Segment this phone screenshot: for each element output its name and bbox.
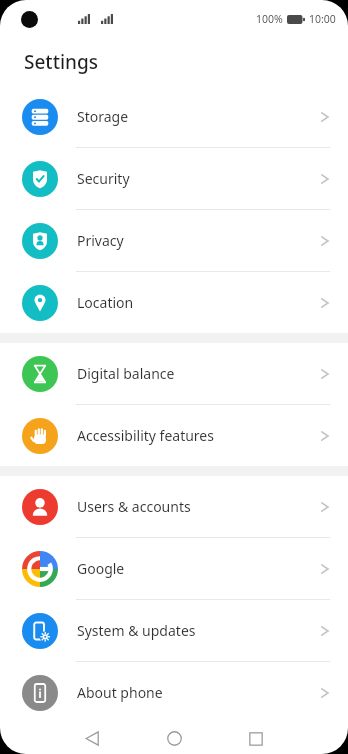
staticText: System & updates bbox=[77, 621, 196, 640]
button[interactable]: System & updates bbox=[0, 600, 348, 661]
button[interactable]: Accessibility features bbox=[0, 405, 348, 466]
staticText: Settings bbox=[24, 49, 98, 75]
staticText: Accessibility features bbox=[77, 426, 214, 445]
staticText: 100% bbox=[256, 12, 283, 26]
button[interactable]: Security bbox=[0, 148, 348, 209]
button[interactable]: Recents bbox=[228, 723, 284, 754]
staticText: Digital balance bbox=[77, 364, 175, 383]
button[interactable]: Digital balance bbox=[0, 343, 348, 404]
staticText: 10:00 bbox=[309, 12, 336, 26]
button[interactable]: Back bbox=[64, 723, 120, 754]
staticText: Location bbox=[77, 293, 134, 312]
button[interactable]: About phone bbox=[0, 662, 348, 723]
button[interactable]: Home bbox=[146, 723, 202, 754]
staticText: About phone bbox=[77, 683, 163, 702]
button[interactable]: Users & accounts bbox=[0, 476, 348, 537]
button[interactable]: Location bbox=[0, 272, 348, 333]
button[interactable]: Privacy bbox=[0, 210, 348, 271]
button[interactable]: Storage bbox=[0, 86, 348, 147]
staticText: Users & accounts bbox=[77, 497, 191, 516]
staticText: Security bbox=[77, 169, 130, 188]
staticText: Storage bbox=[77, 107, 129, 126]
button[interactable]: Google bbox=[0, 538, 348, 599]
staticText: Google bbox=[77, 559, 125, 578]
staticText: Privacy bbox=[77, 231, 124, 250]
